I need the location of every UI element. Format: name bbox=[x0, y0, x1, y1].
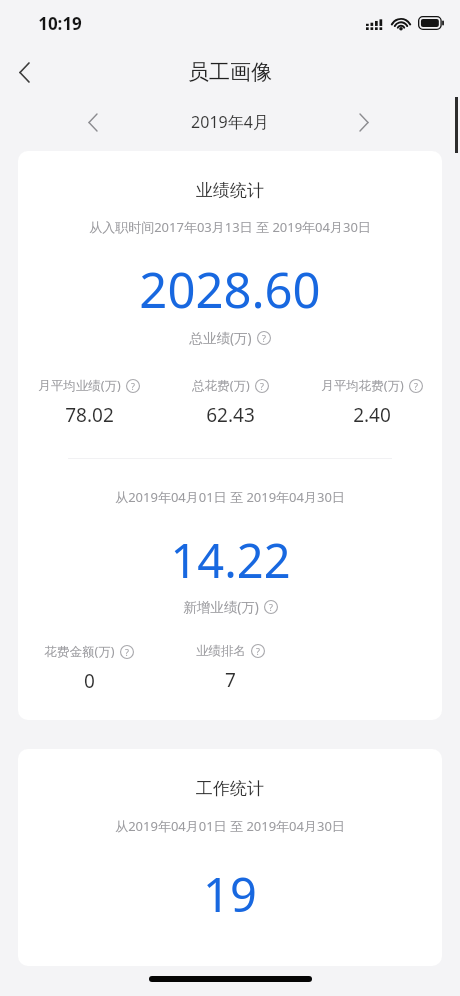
staticText: 花费金额(万) bbox=[44, 643, 115, 660]
button[interactable]: 月平均业绩(万) bbox=[18, 377, 160, 428]
staticText: ? bbox=[269, 601, 273, 613]
staticText: 总业绩(万) bbox=[189, 329, 252, 347]
staticText: 月平均业绩(万) bbox=[38, 377, 121, 394]
staticText: 业绩统计 bbox=[196, 180, 264, 201]
staticText: 新增业绩(万) bbox=[183, 598, 259, 616]
staticText: 员工画像 bbox=[188, 59, 272, 85]
button[interactable]: Help bbox=[257, 331, 271, 345]
staticText: 总花费(万) bbox=[192, 377, 250, 394]
button[interactable]: Next month bbox=[345, 103, 383, 141]
staticText: 14.22 bbox=[170, 528, 291, 592]
button[interactable]: 业绩统计 bbox=[18, 151, 442, 720]
staticText: 从2019年04月01日 至 2019年04月30日 bbox=[115, 488, 345, 506]
staticText: 从入职时间2017年03月13日 至 2019年04月30日 bbox=[89, 218, 371, 236]
button[interactable]: 月平均花费(万) bbox=[301, 377, 442, 428]
button[interactable]: Help bbox=[409, 379, 423, 393]
staticText: 2028.60 bbox=[139, 256, 321, 323]
staticText: 2.40 bbox=[353, 402, 391, 428]
button[interactable]: Back bbox=[0, 48, 48, 96]
button[interactable]: Help bbox=[255, 379, 269, 393]
staticText: 月平均花费(万) bbox=[321, 377, 404, 394]
staticText: 62.43 bbox=[206, 402, 255, 428]
button[interactable]: Help bbox=[264, 600, 278, 614]
staticText: 0 bbox=[84, 668, 95, 694]
button[interactable]: 花费金额(万) bbox=[18, 643, 160, 694]
staticText: ? bbox=[262, 332, 266, 344]
staticText: 从2019年04月01日 至 2019年04月30日 bbox=[115, 817, 345, 835]
staticText: ? bbox=[414, 380, 418, 392]
staticText: ? bbox=[256, 645, 260, 657]
button[interactable]: 总花费(万) bbox=[160, 377, 301, 428]
staticText: ? bbox=[125, 646, 129, 658]
staticText: ? bbox=[131, 380, 135, 392]
staticText: ? bbox=[260, 380, 264, 392]
staticText: 10:19 bbox=[38, 12, 82, 35]
staticText: 2019年4月 bbox=[191, 111, 269, 133]
staticText: 业绩排名 bbox=[196, 643, 246, 659]
staticText: 19 bbox=[203, 862, 257, 926]
button[interactable]: 工作统计 bbox=[18, 749, 442, 966]
button[interactable]: Previous month bbox=[74, 103, 112, 141]
button[interactable]: Help bbox=[126, 379, 140, 393]
staticText: 78.02 bbox=[65, 402, 114, 428]
button[interactable]: Help bbox=[120, 645, 134, 659]
staticText: 工作统计 bbox=[196, 778, 264, 799]
button[interactable]: Help bbox=[251, 644, 265, 658]
staticText: 7 bbox=[225, 667, 236, 693]
button[interactable]: 业绩排名 bbox=[160, 643, 301, 693]
